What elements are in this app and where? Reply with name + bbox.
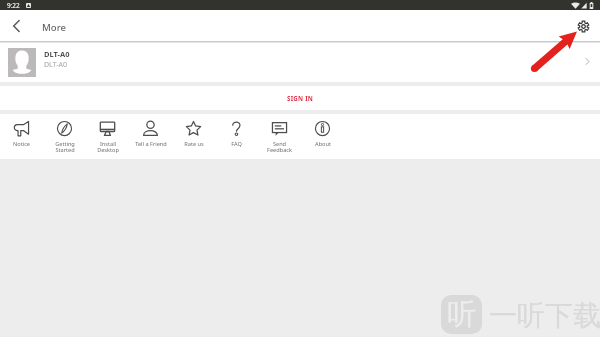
staticText: SIGN IN: [287, 94, 314, 102]
button[interactable]: FAQ: [215, 114, 258, 159]
staticText: Install Desktop: [97, 140, 119, 154]
button[interactable]: Rate us: [172, 114, 215, 159]
staticText: More: [42, 21, 67, 34]
button[interactable]: Settings: [573, 16, 593, 36]
button[interactable]: Getting Started: [43, 114, 86, 159]
staticText: Rate us: [184, 140, 204, 148]
button[interactable]: Install Desktop: [86, 114, 129, 159]
staticText: 一听下载: [489, 298, 600, 333]
staticText: DLT-A0: [44, 49, 70, 59]
staticText: 听: [447, 296, 476, 333]
button[interactable]: Tell a Friend: [129, 114, 172, 159]
button[interactable]: About: [301, 114, 344, 159]
button[interactable]: DLT-A0: [0, 42, 600, 82]
staticText: Tell a Friend: [135, 140, 167, 148]
staticText: Notice: [13, 140, 30, 148]
staticText: DLT-A0: [44, 60, 67, 70]
button[interactable]: SIGN IN: [0, 86, 600, 110]
staticText: Getting Started: [55, 140, 75, 154]
staticText: Send Feedback: [267, 140, 292, 154]
staticText: FAQ: [231, 140, 242, 148]
button[interactable]: Send Feedback: [258, 114, 301, 159]
staticText: 9:22: [7, 1, 20, 10]
staticText: About: [315, 140, 331, 148]
button[interactable]: Back: [4, 14, 28, 38]
button[interactable]: Notice: [0, 114, 43, 159]
